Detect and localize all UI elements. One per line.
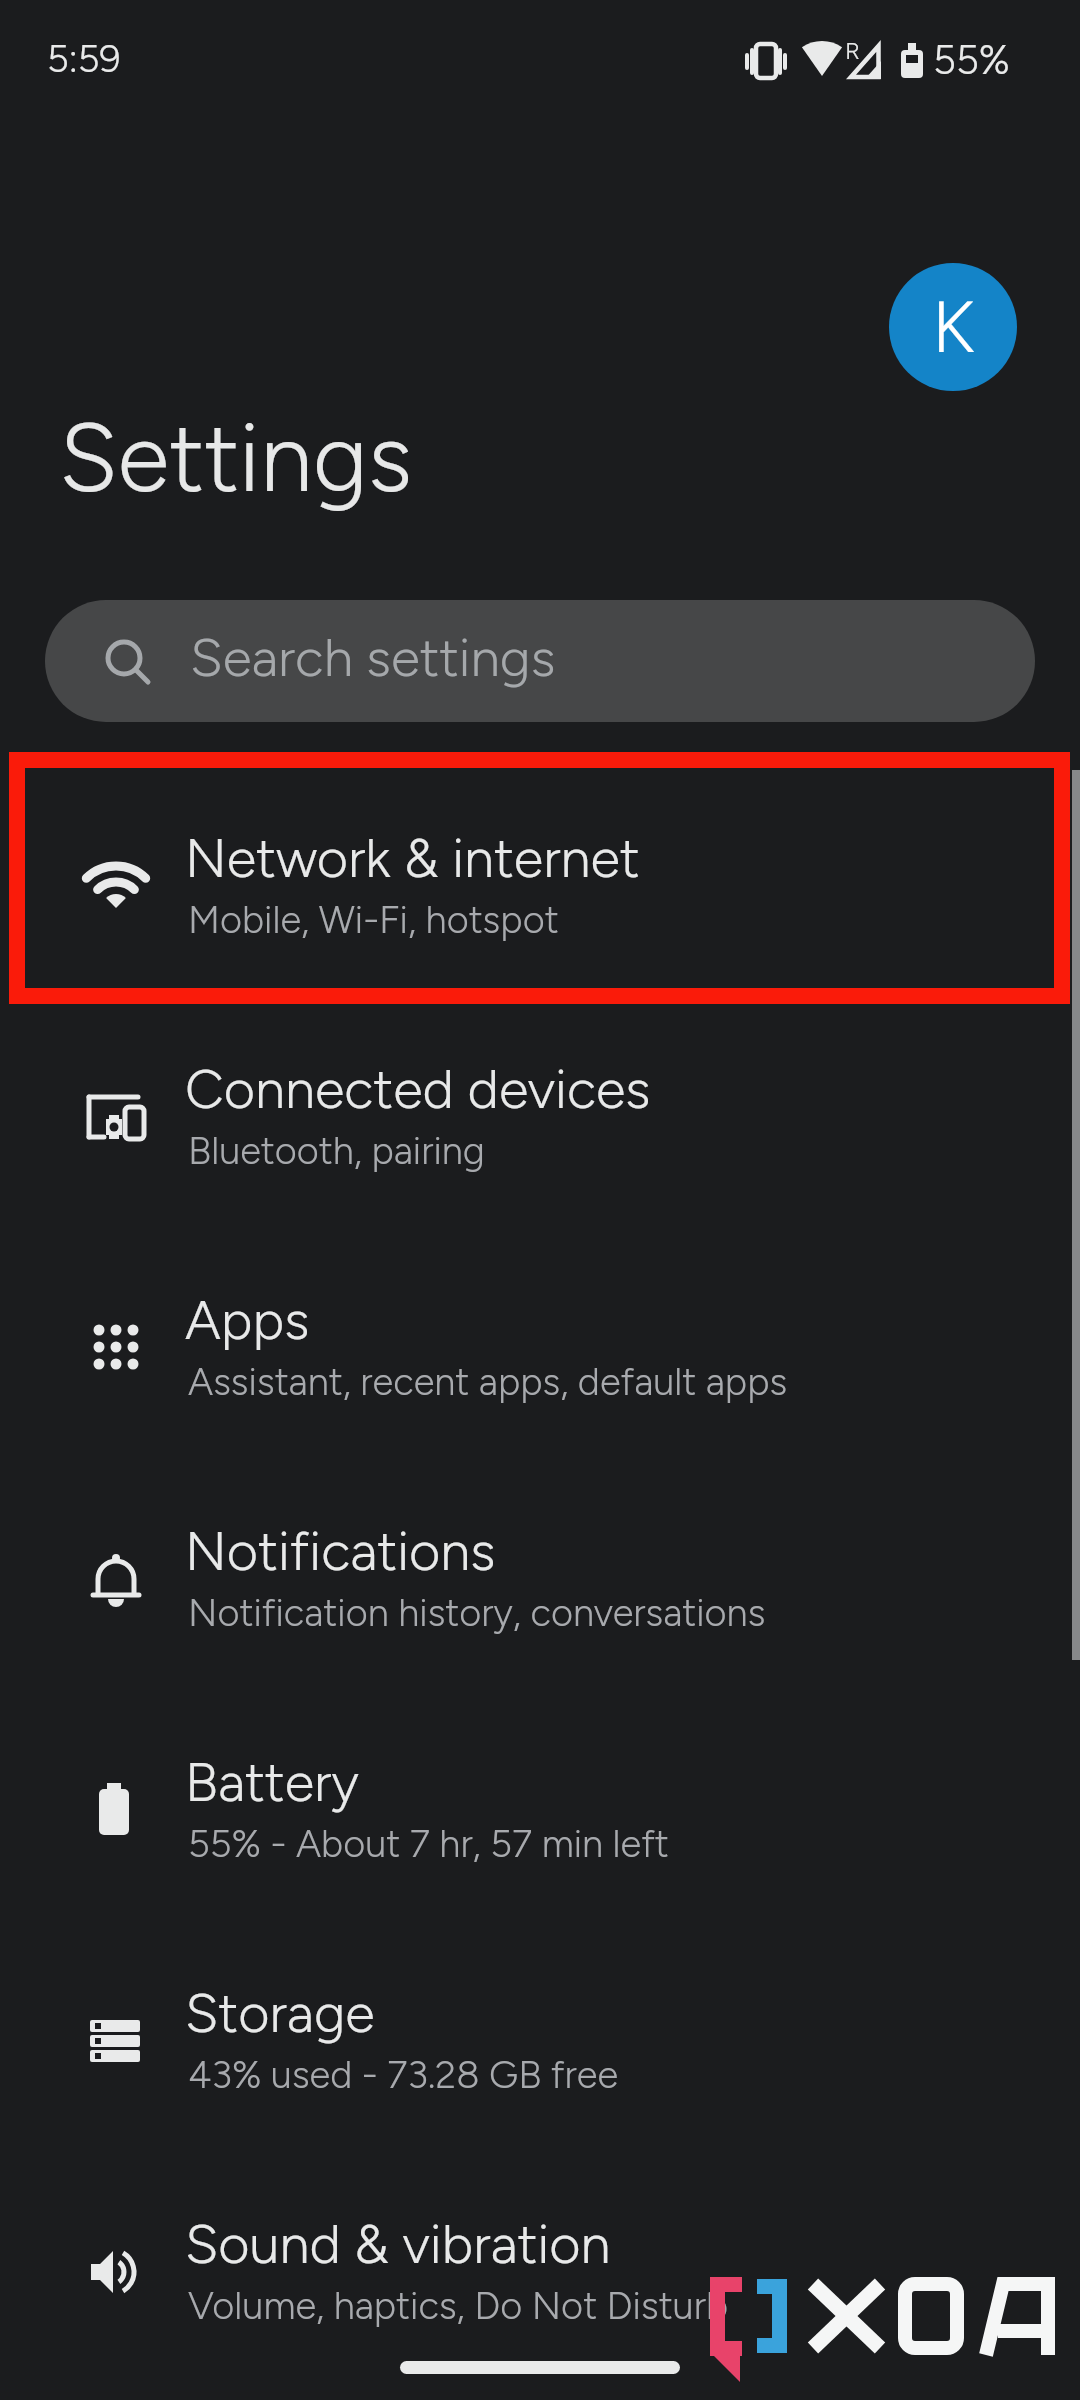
staticText: Battery xyxy=(185,1750,359,1815)
staticText: Mobile, Wi-Fi, hotspot xyxy=(188,897,559,943)
staticText: R xyxy=(845,36,860,65)
staticText: 5:59 xyxy=(47,36,121,82)
staticText: Settings xyxy=(59,401,413,515)
staticText: Network & internet xyxy=(185,826,640,891)
button[interactable]: Notifications xyxy=(0,1460,1080,1691)
button[interactable]: Connected devices xyxy=(0,998,1080,1229)
button[interactable]: K xyxy=(889,263,1017,391)
button[interactable]: Sound & vibration xyxy=(0,2153,1080,2384)
staticText: Volume, haptics, Do Not Disturb xyxy=(188,2283,729,2329)
staticText: Notifications xyxy=(185,1519,496,1584)
button[interactable]: Search settings xyxy=(45,600,1035,722)
staticText: Assistant, recent apps, default apps xyxy=(188,1359,788,1405)
staticText: Storage xyxy=(185,1981,375,2046)
button[interactable]: Network & internet xyxy=(0,767,1080,998)
button[interactable]: Storage xyxy=(0,1922,1080,2153)
button[interactable]: Apps xyxy=(0,1229,1080,1460)
staticText: 55% - About 7 hr, 57 min left xyxy=(188,1821,669,1867)
button[interactable]: Battery xyxy=(0,1691,1080,1922)
staticText: Bluetooth, pairing xyxy=(188,1128,485,1174)
staticText: K xyxy=(932,284,975,370)
staticText: Apps xyxy=(185,1288,310,1353)
staticText: Sound & vibration xyxy=(185,2212,611,2277)
staticText: 55% xyxy=(933,36,1010,84)
staticText: 43% used - 73.28 GB free xyxy=(188,2052,619,2098)
staticText: Notification history, conversations xyxy=(188,1590,766,1636)
staticText: Search settings xyxy=(190,626,556,690)
staticText: Connected devices xyxy=(185,1057,651,1122)
